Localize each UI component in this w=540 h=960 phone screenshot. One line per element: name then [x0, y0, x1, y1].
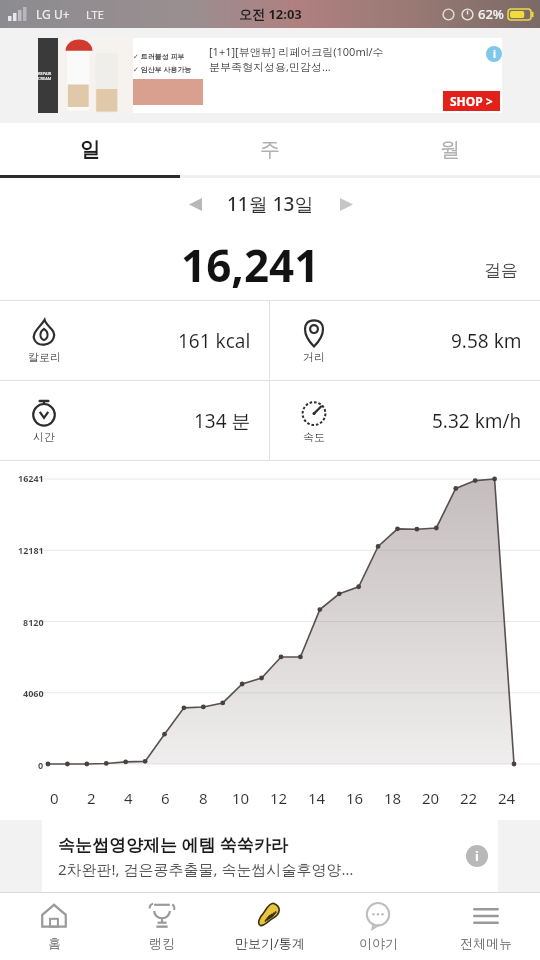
staticText: 62% [478, 5, 504, 23]
staticText: 속눈썹영양제는 에템 쑥쑥카라 [58, 833, 288, 856]
staticText: 8120 [23, 616, 44, 628]
button[interactable]: 거리 [270, 301, 540, 380]
button[interactable]: 홈 [0, 893, 108, 960]
staticText: 12 [270, 788, 288, 808]
staticText: 2 [87, 788, 96, 808]
staticText: REPAIR CREAM [38, 71, 58, 81]
staticText: 12181 [18, 544, 44, 556]
staticText: 시간 [33, 430, 55, 444]
staticText: 칼로리 [28, 350, 61, 364]
staticText: 일 [80, 137, 100, 162]
staticText: 랭킹 [149, 935, 175, 951]
staticText: 4060 [23, 687, 44, 699]
staticText: 6 [161, 788, 170, 808]
staticText: 만보기/통계 [235, 934, 305, 952]
staticText: LG U+ [36, 6, 70, 22]
staticText: 9.58 km [451, 328, 522, 354]
staticText: LTE [86, 7, 104, 22]
staticText: 거리 [303, 350, 325, 364]
staticText: 11월 13일 [227, 191, 314, 217]
staticText: i [475, 847, 479, 865]
staticText: 16241 [18, 472, 44, 484]
staticText: 홈 [48, 935, 61, 951]
button[interactable]: 시간 [0, 381, 269, 460]
staticText: 22 [460, 788, 478, 808]
button[interactable]: 속눈썹영양제는 에템 쑥쑥카라 [58, 820, 488, 892]
staticText: 161 kcal [178, 328, 251, 354]
staticText: ✓ 임산부 사용가능 [133, 65, 192, 75]
staticText: [1+1][뷰앤뷰] 리페어크림(100ml/수 [209, 44, 384, 59]
button[interactable]: Ad info [466, 845, 488, 867]
staticText: 16 [346, 788, 364, 808]
button[interactable]: 속도 [270, 381, 540, 460]
button[interactable]: Next day [326, 184, 366, 224]
staticText: 4 [124, 788, 133, 808]
staticText: SHOP > [450, 93, 493, 109]
staticText: ✓ 트러블성 피부 [133, 52, 185, 62]
staticText: 0 [38, 759, 44, 771]
staticText: 24 [498, 788, 516, 808]
button[interactable]: 만보기/통계 [216, 893, 324, 960]
staticText: 전체메뉴 [460, 935, 512, 951]
button[interactable]: REPAIR CREAM [38, 38, 502, 113]
staticText: 8 [199, 788, 208, 808]
staticText: 0 [50, 788, 59, 808]
button[interactable]: Ad info [486, 46, 502, 62]
staticText: 분부족형지성용,민감성... [209, 59, 331, 74]
staticText: 오전 12:03 [239, 5, 302, 23]
button[interactable]: Previous day [175, 184, 215, 224]
staticText: 주 [260, 137, 280, 162]
staticText: 10 [232, 788, 250, 808]
button[interactable]: 월 [360, 123, 540, 175]
staticText: 월 [440, 137, 460, 162]
button[interactable]: 이야기 [324, 893, 432, 960]
staticText: 속도 [303, 430, 325, 444]
staticText: 이야기 [359, 935, 398, 951]
button[interactable]: 전체메뉴 [432, 893, 540, 960]
button[interactable]: 주 [180, 123, 360, 175]
staticText: 20 [422, 788, 440, 808]
button[interactable]: 칼로리 [0, 301, 269, 380]
staticText: 18 [384, 788, 402, 808]
staticText: 14 [308, 788, 326, 808]
button[interactable]: 일 [0, 123, 180, 175]
staticText: i [493, 47, 496, 61]
staticText: 134 분 [194, 408, 251, 434]
staticText: 5.32 km/h [432, 408, 522, 434]
staticText: 걸음 [484, 260, 518, 281]
staticText: 2차완판!, 검은콩추출물, 속눈썹시술후영양… [58, 859, 354, 879]
staticText: 16,241 [181, 235, 320, 295]
button[interactable]: 랭킹 [108, 893, 216, 960]
